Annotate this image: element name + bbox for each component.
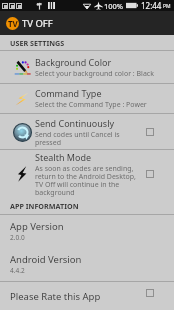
- staticText: Command Type: [35, 87, 102, 99]
- staticText: PM: [163, 3, 171, 10]
- staticText: Send codes until Cancel is pressed: [35, 130, 120, 147]
- staticText: App Version: [10, 220, 64, 233]
- staticText: 12:44: [141, 0, 162, 11]
- staticText: APP INFORMATION: [10, 201, 79, 211]
- staticText: As soon as codes are sending, return to …: [35, 164, 136, 197]
- staticText: 2.0.0: [10, 233, 25, 242]
- staticText: TV OFF: [22, 17, 53, 30]
- button[interactable]: Command Type: [0, 84, 174, 113]
- staticText: Select your background color : Black: [35, 69, 154, 79]
- button[interactable]: Background Color: [0, 51, 174, 83]
- button[interactable]: Please Rate this App: [0, 282, 174, 310]
- staticText: Please Rate this App: [10, 290, 101, 303]
- button[interactable]: App Version: [0, 215, 174, 247]
- staticText: 100%: [104, 1, 124, 11]
- button[interactable]: App icon: [6, 17, 19, 30]
- button[interactable]: Stealth Mode: [0, 150, 174, 198]
- staticText: 4.4.2: [10, 266, 25, 275]
- staticText: Select the Command Type : Power: [35, 100, 147, 110]
- staticText: TV: [8, 18, 18, 29]
- staticText: USER SETTINGS: [10, 38, 65, 48]
- button[interactable]: Android Version: [0, 247, 174, 281]
- button[interactable]: Send Continuously: [0, 114, 174, 149]
- staticText: Stealth Mode: [35, 151, 92, 163]
- staticText: Android Version: [10, 253, 82, 266]
- staticText: Background Color: [35, 56, 112, 68]
- staticText: Send Continuously: [35, 117, 115, 129]
